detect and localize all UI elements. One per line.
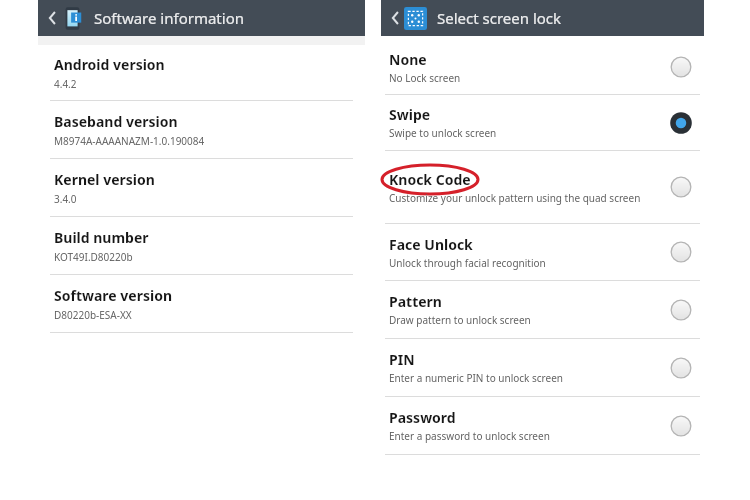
staticText: Build number	[54, 228, 149, 247]
button[interactable]: Select screen lock	[404, 7, 427, 30]
staticText: Draw pattern to unlock screen	[389, 313, 531, 327]
staticText: 3.4.0	[54, 192, 77, 206]
button[interactable]: Software version	[38, 275, 365, 332]
staticText: M8974A-AAAANAZM-1.0.190084	[54, 134, 205, 148]
staticText: Baseband version	[54, 112, 178, 131]
staticText: Software version	[54, 286, 172, 305]
staticText: D80220b-ESA-XX	[54, 308, 132, 322]
staticText: KOT49I.D80220b	[54, 250, 133, 264]
staticText: Knock Code	[389, 170, 471, 189]
button[interactable]: Swipe	[381, 95, 704, 150]
staticText: Enter a numeric PIN to unlock screen	[389, 371, 563, 385]
staticText: Swipe	[389, 105, 431, 124]
button[interactable]: PIN	[381, 339, 704, 396]
staticText: Face Unlock	[389, 235, 473, 254]
button[interactable]: Password	[381, 397, 704, 454]
button[interactable]: Pattern	[381, 281, 704, 338]
button[interactable]: Back	[387, 0, 403, 36]
button[interactable]: Face Unlock	[381, 224, 704, 280]
staticText: Select screen lock	[437, 8, 562, 28]
button[interactable]: Android version	[38, 45, 365, 100]
button[interactable]: Back	[44, 0, 60, 36]
staticText: Software information	[94, 8, 244, 28]
button[interactable]: None	[381, 40, 704, 94]
staticText: PIN	[389, 350, 415, 369]
staticText: Pattern	[389, 292, 442, 311]
button[interactable]: Kernel version	[38, 159, 365, 216]
staticText: Swipe to unlock screen	[389, 126, 497, 140]
button[interactable]: Build number	[38, 217, 365, 274]
staticText: Customize your unlock pattern using the …	[389, 191, 641, 205]
staticText: Unlock through facial recognition	[389, 256, 546, 270]
button[interactable]: Baseband version	[38, 101, 365, 158]
staticText: 4.4.2	[54, 77, 77, 91]
button[interactable]: Knock Code	[381, 151, 704, 223]
staticText: Android version	[54, 55, 165, 74]
button[interactable]: Software information	[61, 7, 84, 30]
staticText: No Lock screen	[389, 71, 461, 85]
staticText: None	[389, 50, 427, 69]
staticText: Kernel version	[54, 170, 155, 189]
staticText: Enter a password to unlock screen	[389, 429, 550, 443]
staticText: Password	[389, 408, 456, 427]
